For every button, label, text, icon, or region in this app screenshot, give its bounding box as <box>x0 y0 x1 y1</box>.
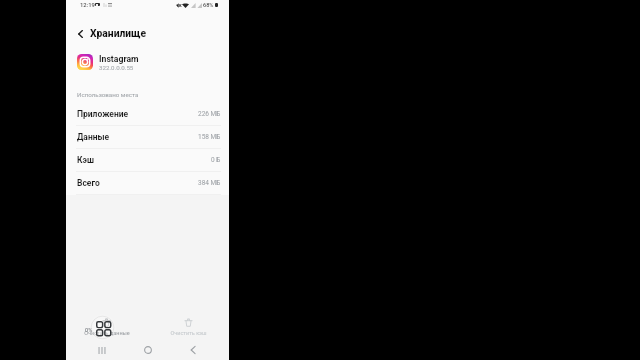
staticText: Всего <box>77 178 100 188</box>
staticText: Хранилище <box>90 27 147 39</box>
staticText: 322.0.0.0.55 <box>99 64 134 71</box>
button[interactable]: Назад <box>71 25 89 43</box>
button[interactable]: Очистить данные <box>66 310 147 343</box>
button[interactable]: Данные <box>66 126 229 148</box>
staticText: Instagram <box>99 54 139 64</box>
button[interactable]: Последние приложения <box>89 341 115 359</box>
button[interactable]: Всего <box>66 172 229 194</box>
button[interactable]: Назад <box>180 341 206 359</box>
staticText: 226 МБ <box>198 110 221 118</box>
staticText: Приложение <box>77 109 129 119</box>
button[interactable]: Главный экран <box>135 341 161 359</box>
staticText: 384 МБ <box>198 179 221 187</box>
staticText: 0 Б <box>211 156 221 164</box>
staticText: Данные <box>77 132 110 142</box>
staticText: Очистить кэш <box>170 330 207 336</box>
button[interactable]: Кэш <box>66 149 229 171</box>
staticText: 0% <box>85 327 93 333</box>
button[interactable]: Очистить кэш <box>147 310 229 343</box>
staticText: Кэш <box>77 155 94 165</box>
staticText: Очистить данные <box>84 330 130 336</box>
staticText: 68% <box>203 2 214 9</box>
staticText: 158 МБ <box>198 133 221 141</box>
staticText: 12:19 <box>80 2 95 9</box>
button[interactable]: Приложение <box>66 103 229 125</box>
staticText: Использовано места <box>77 91 139 98</box>
